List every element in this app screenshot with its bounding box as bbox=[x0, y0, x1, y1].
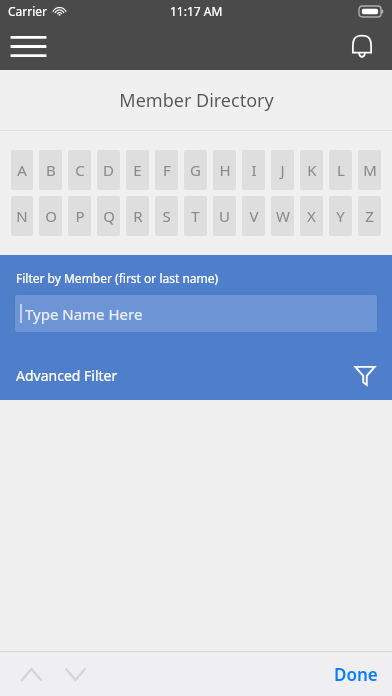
staticText: R bbox=[133, 206, 143, 226]
button[interactable]: O bbox=[39, 196, 62, 236]
staticText: G bbox=[190, 160, 201, 180]
button[interactable]: Done bbox=[320, 655, 392, 694]
button[interactable]: I bbox=[242, 150, 265, 190]
staticText: Member Directory bbox=[119, 88, 274, 113]
staticText: I bbox=[251, 160, 257, 180]
button[interactable]: B bbox=[39, 150, 62, 190]
button[interactable]: Y bbox=[329, 196, 352, 236]
staticText: N bbox=[16, 206, 28, 226]
button[interactable]: H bbox=[213, 150, 236, 190]
button[interactable]: N bbox=[11, 196, 33, 236]
button[interactable]: G bbox=[184, 150, 207, 190]
staticText: J bbox=[280, 160, 285, 180]
staticText: Z bbox=[365, 206, 374, 226]
button[interactable]: E bbox=[126, 150, 149, 190]
staticText: K bbox=[307, 160, 317, 180]
staticText: Carrier bbox=[8, 3, 48, 19]
button[interactable]: C bbox=[68, 150, 91, 190]
button[interactable]: A bbox=[11, 150, 33, 190]
staticText: B bbox=[46, 160, 56, 180]
staticText: T bbox=[191, 206, 200, 226]
staticText: S bbox=[162, 206, 171, 226]
staticText: V bbox=[249, 206, 259, 226]
staticText: D bbox=[103, 160, 114, 180]
button[interactable]: L bbox=[329, 150, 352, 190]
staticText: L bbox=[337, 160, 345, 180]
staticText: P bbox=[75, 206, 85, 226]
button[interactable]: Q bbox=[97, 196, 120, 236]
staticText: C bbox=[75, 160, 85, 180]
staticText: O bbox=[45, 206, 57, 226]
button[interactable]: S bbox=[155, 196, 178, 236]
staticText: A bbox=[17, 160, 27, 180]
button[interactable]: F bbox=[155, 150, 178, 190]
button[interactable]: T bbox=[184, 196, 207, 236]
button[interactable]: W bbox=[271, 196, 294, 236]
button[interactable]: X bbox=[300, 196, 323, 236]
button[interactable]: Advanced Filter bbox=[0, 358, 392, 392]
button[interactable]: R bbox=[126, 196, 149, 236]
staticText: M bbox=[363, 160, 377, 180]
staticText: Filter by Member (first or last name) bbox=[16, 270, 219, 286]
staticText: U bbox=[219, 206, 230, 226]
staticText: 11:17 AM bbox=[170, 3, 223, 19]
button[interactable]: Menu bbox=[6, 24, 50, 68]
staticText: W bbox=[276, 206, 290, 226]
button[interactable]: M bbox=[358, 150, 381, 190]
button[interactable]: P bbox=[68, 196, 91, 236]
staticText: X bbox=[307, 206, 316, 226]
button[interactable]: J bbox=[271, 150, 294, 190]
staticText: F bbox=[163, 160, 171, 180]
button[interactable]: Notifications bbox=[340, 24, 384, 68]
staticText: Q bbox=[103, 206, 115, 226]
staticText: Done bbox=[334, 663, 378, 686]
staticText: Y bbox=[336, 206, 345, 226]
staticText: Advanced Filter bbox=[16, 366, 118, 385]
button[interactable]: K bbox=[300, 150, 323, 190]
staticText: H bbox=[219, 160, 231, 180]
button[interactable]: Next field bbox=[56, 655, 94, 693]
button[interactable]: U bbox=[213, 196, 236, 236]
button[interactable]: Previous field bbox=[12, 655, 50, 693]
button[interactable]: D bbox=[97, 150, 120, 190]
staticText: Type Name Here bbox=[25, 304, 143, 324]
button[interactable]: Z bbox=[358, 196, 381, 236]
button[interactable]: V bbox=[242, 196, 265, 236]
button[interactable]: Type Name Here bbox=[15, 295, 377, 332]
staticText: E bbox=[133, 160, 142, 180]
